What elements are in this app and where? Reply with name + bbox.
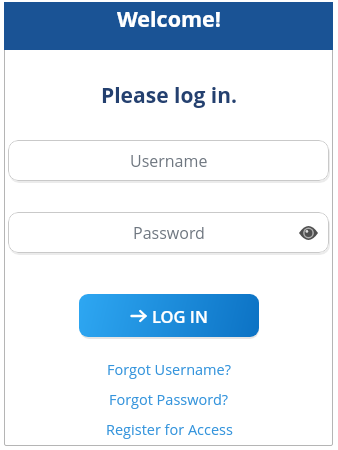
button[interactable]: Username: [8, 140, 329, 181]
staticText: LOG IN: [152, 305, 208, 327]
button[interactable]: LOG IN: [79, 294, 259, 337]
button[interactable]: Password: [8, 212, 329, 253]
staticText: Forgot Password?: [109, 390, 229, 410]
button[interactable]: Forgot Password?: [109, 390, 229, 410]
staticText: Welcome!: [117, 4, 221, 33]
button[interactable]: [298, 223, 318, 243]
button[interactable]: Forgot Username?: [107, 360, 231, 380]
staticText: Register for Access: [106, 420, 233, 440]
staticText: Username: [130, 150, 208, 172]
button[interactable]: Register for Access: [106, 420, 233, 440]
staticText: Password: [133, 222, 205, 244]
staticText: Forgot Username?: [107, 360, 231, 380]
staticText: Please log in.: [101, 81, 237, 110]
